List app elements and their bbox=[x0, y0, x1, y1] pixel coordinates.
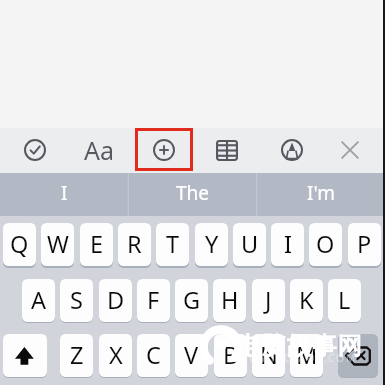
staticText: W bbox=[47, 228, 69, 260]
staticText: Y bbox=[205, 228, 219, 260]
button[interactable]: Close bbox=[334, 134, 366, 166]
button[interactable]: G bbox=[175, 279, 208, 322]
staticText: X bbox=[109, 339, 123, 371]
button[interactable]: The bbox=[129, 173, 257, 216]
button[interactable]: L bbox=[328, 279, 361, 322]
staticText: B bbox=[223, 339, 239, 371]
button[interactable]: D bbox=[99, 279, 132, 322]
button[interactable]: I bbox=[271, 223, 304, 266]
button[interactable]: F bbox=[137, 279, 170, 322]
button[interactable]: U bbox=[233, 223, 266, 266]
staticText: F bbox=[147, 284, 160, 316]
button[interactable]: B bbox=[214, 334, 247, 377]
staticText: R bbox=[127, 228, 142, 260]
staticText: N bbox=[260, 339, 278, 371]
button[interactable]: N bbox=[252, 334, 285, 377]
button[interactable]: C bbox=[137, 334, 170, 377]
button[interactable]: K bbox=[290, 279, 323, 322]
button[interactable]: H bbox=[213, 279, 246, 322]
button[interactable]: S bbox=[60, 279, 93, 322]
button[interactable]: Z bbox=[60, 334, 93, 377]
button[interactable]: Table bbox=[210, 134, 243, 166]
staticText: S bbox=[70, 284, 83, 316]
button[interactable]: Insert bbox=[138, 131, 190, 168]
button[interactable]: Markup bbox=[276, 134, 308, 166]
staticText: L bbox=[338, 284, 351, 316]
button[interactable]: O bbox=[309, 223, 342, 266]
staticText: K bbox=[299, 284, 314, 316]
staticText: J bbox=[265, 284, 272, 316]
button[interactable]: M bbox=[290, 334, 323, 377]
button[interactable]: R bbox=[118, 223, 151, 266]
button[interactable]: E bbox=[80, 223, 113, 266]
staticText: Aa bbox=[84, 133, 115, 165]
staticText: P bbox=[357, 228, 372, 260]
staticText: U bbox=[241, 228, 259, 260]
staticText: V bbox=[184, 339, 199, 371]
button[interactable]: Q bbox=[3, 223, 36, 266]
staticText: H bbox=[221, 284, 239, 316]
staticText: C bbox=[146, 339, 161, 371]
staticText: M bbox=[296, 339, 318, 371]
button[interactable]: Shift bbox=[3, 334, 47, 377]
button[interactable]: T bbox=[156, 223, 189, 266]
staticText: 电脑故事网 bbox=[236, 331, 362, 361]
staticText: A bbox=[31, 284, 47, 316]
button[interactable]: Done bbox=[19, 134, 51, 166]
staticText: I bbox=[284, 228, 292, 260]
button[interactable]: Y bbox=[195, 223, 228, 266]
staticText: Z bbox=[70, 339, 84, 371]
button[interactable]: W bbox=[41, 223, 74, 266]
button[interactable]: A bbox=[22, 279, 55, 322]
button[interactable]: Aa bbox=[78, 134, 120, 166]
button[interactable]: P bbox=[348, 223, 381, 266]
staticText: E bbox=[90, 228, 104, 260]
staticText: I'm bbox=[307, 180, 335, 206]
staticText: D bbox=[107, 284, 125, 316]
button[interactable]: I bbox=[0, 173, 129, 216]
staticText: WWW.PCFAQ1.COM bbox=[238, 351, 357, 365]
staticText: The bbox=[176, 180, 210, 206]
staticText: Q bbox=[10, 228, 29, 260]
staticText: G bbox=[183, 284, 201, 316]
button[interactable]: X bbox=[99, 334, 132, 377]
staticText: I bbox=[61, 180, 68, 206]
button[interactable]: I'm bbox=[257, 173, 385, 216]
button[interactable]: V bbox=[175, 334, 208, 377]
staticText: O bbox=[316, 228, 335, 260]
staticText: T bbox=[166, 228, 180, 260]
button[interactable]: J bbox=[252, 279, 285, 322]
button[interactable]: Delete bbox=[338, 334, 378, 377]
